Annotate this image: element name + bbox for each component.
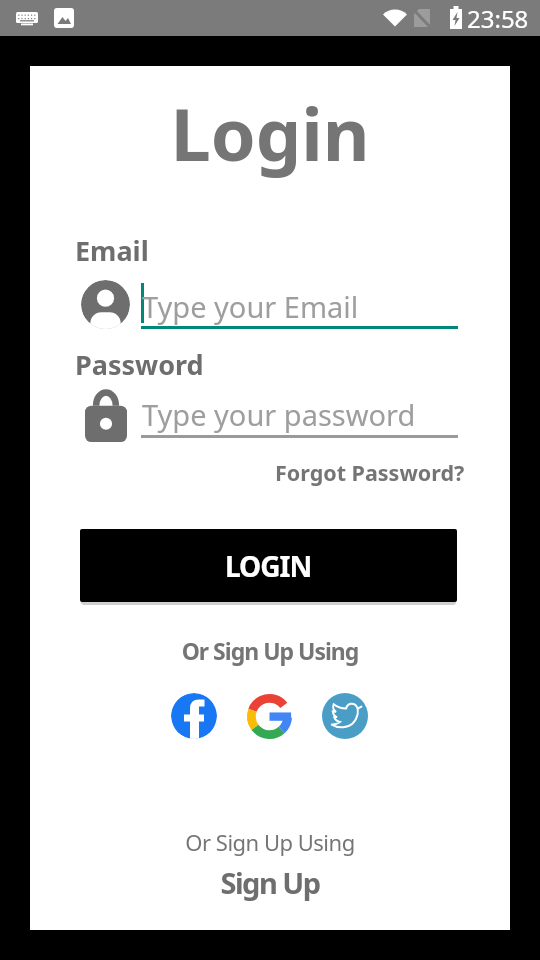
button[interactable]: Forgot Password? [275, 458, 465, 487]
button[interactable]: LOGIN [80, 529, 457, 602]
staticText: Email [75, 232, 149, 269]
button[interactable] [247, 694, 292, 739]
button[interactable]: Type your Email [75, 280, 460, 329]
staticText: Password [75, 346, 204, 383]
staticText: Login [30, 84, 510, 182]
staticText: Type your password [142, 395, 416, 434]
button[interactable]: Type your password [75, 389, 460, 442]
button[interactable] [322, 693, 368, 739]
staticText: LOGIN [225, 547, 312, 585]
button[interactable]: Sign Up [30, 863, 510, 902]
staticText: Or Sign Up Using [30, 635, 510, 666]
button[interactable] [171, 693, 217, 739]
staticText: 23:58 [467, 2, 529, 35]
staticText: Or Sign Up Using [30, 827, 510, 857]
staticText: Type your Email [142, 287, 359, 326]
